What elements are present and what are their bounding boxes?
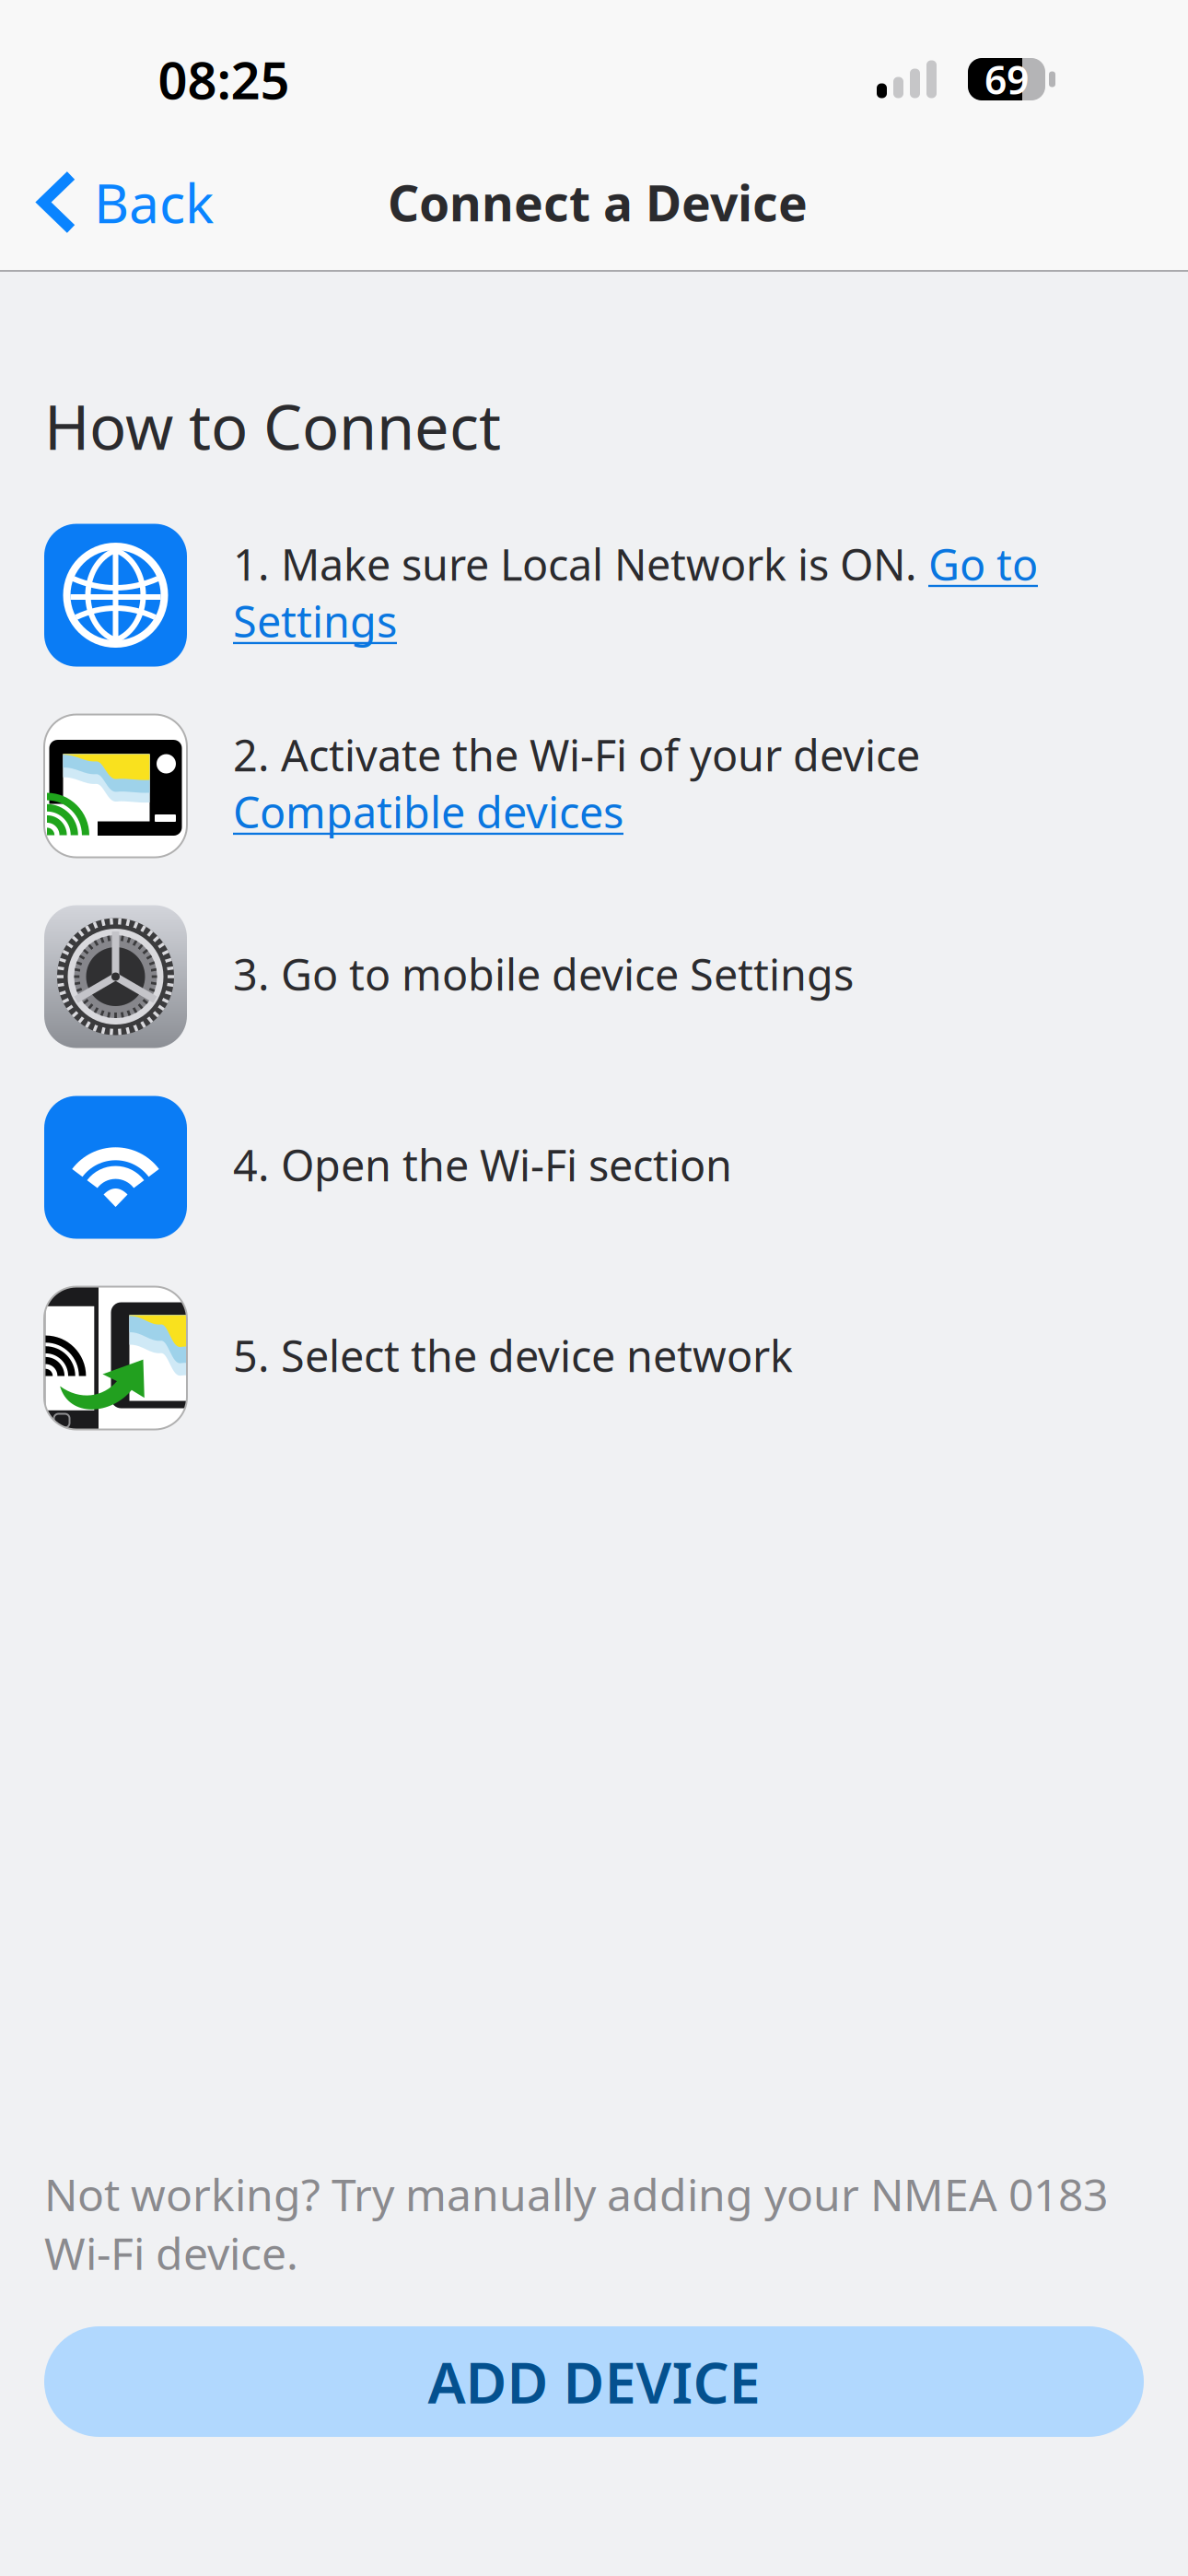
- staticText: 3. Go to mobile device Settings: [233, 945, 854, 1002]
- staticText: Back: [94, 166, 214, 238]
- staticText: How to Connect: [44, 385, 501, 467]
- staticText: 5. Select the device network: [233, 1327, 793, 1384]
- staticText: Not working? Try manually adding your NM…: [44, 2165, 1108, 2282]
- button[interactable]: Compatible devices: [233, 729, 1144, 843]
- button[interactable]: Back: [29, 150, 223, 255]
- button[interactable]: Go to Settings: [233, 538, 1144, 652]
- staticText: 1. Make sure Local Network is ON. Go to …: [233, 535, 1038, 650]
- staticText: 08:25: [158, 45, 290, 114]
- staticText: 4. Open the Wi-Fi section: [233, 1136, 732, 1193]
- staticText: 2. Activate the Wi-Fi of your device Com…: [233, 726, 920, 840]
- staticText: Connect a Device: [388, 170, 808, 235]
- button[interactable]: ADD DEVICE: [44, 2326, 1144, 2437]
- staticText: 69: [984, 53, 1029, 105]
- staticText: ADD DEVICE: [428, 2344, 760, 2419]
